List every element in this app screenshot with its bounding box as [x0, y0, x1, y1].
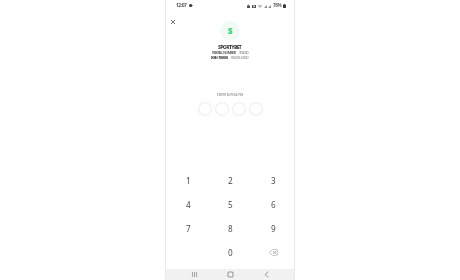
button[interactable]: 0: [208, 240, 251, 264]
staticText: 76%: [273, 2, 282, 8]
button[interactable]: 1: [166, 168, 208, 192]
staticText: 8: [228, 223, 233, 234]
staticText: SPORTYBET: [218, 44, 242, 51]
button[interactable]: 5: [208, 192, 251, 216]
staticText: KSH. 100.00: [211, 55, 228, 60]
button[interactable]: 6: [251, 192, 294, 216]
other: Backspace: [269, 249, 278, 256]
button[interactable]: 2: [208, 168, 251, 192]
staticText: 303030: [239, 50, 248, 55]
staticText: 2: [228, 175, 233, 186]
staticText: 5: [228, 199, 233, 210]
button[interactable]: Close: [166, 15, 180, 29]
button[interactable]: Back: [260, 269, 273, 280]
button[interactable]: 7: [166, 216, 208, 240]
button[interactable]: Home: [224, 269, 237, 280]
staticText: PAY BILL NUMBER: [212, 50, 236, 55]
staticText: 1: [186, 175, 191, 186]
staticText: 7: [186, 223, 191, 234]
staticText: 4: [186, 199, 191, 210]
staticText: 9: [271, 223, 276, 234]
staticText: ENTER M-PESA PIN: [217, 93, 244, 97]
button[interactable]: Backspace: [251, 240, 294, 264]
button[interactable]: Recents: [188, 269, 201, 280]
staticText: 0: [228, 247, 233, 258]
button[interactable]: 3: [251, 168, 294, 192]
button[interactable]: 4: [166, 192, 208, 216]
button[interactable]: 9: [251, 216, 294, 240]
staticText: S: [228, 25, 233, 36]
staticText: FEE: KSH. 23.00: [231, 55, 249, 60]
staticText: 12:07: [176, 2, 187, 9]
staticText: 6: [271, 199, 276, 210]
button[interactable]: 8: [208, 216, 251, 240]
staticText: 3: [271, 175, 276, 186]
